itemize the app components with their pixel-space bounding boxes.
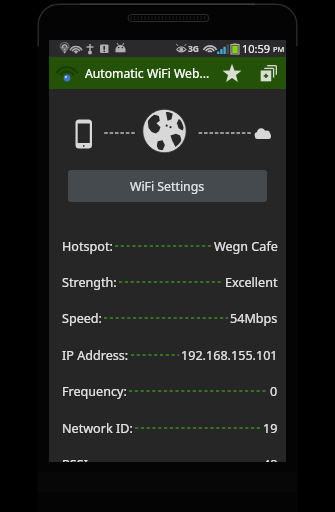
staticText: WiFi Settings <box>130 178 205 195</box>
staticText: Network ID: <box>62 420 133 437</box>
staticText: 54Mbps <box>230 310 278 327</box>
button[interactable]: New window <box>250 57 286 89</box>
staticText: 10:59 <box>242 41 271 56</box>
staticText: Frequency: <box>62 383 127 400</box>
staticText: RSSI: <box>62 456 92 462</box>
staticText: Wegn Cafe <box>214 238 278 255</box>
staticText: PM <box>271 44 285 54</box>
staticText: Automatic WiFi Web... <box>85 65 214 82</box>
staticText: 19 <box>263 420 278 437</box>
staticText: IP Address: <box>62 347 129 364</box>
staticText: 3G <box>188 43 200 55</box>
staticText: 0 <box>270 383 278 400</box>
button[interactable]: WiFi Settings <box>68 170 267 202</box>
staticText: Strength: <box>62 274 117 291</box>
staticText: 192.168.155.101 <box>181 347 278 364</box>
button[interactable]: Favorite <box>214 57 250 89</box>
staticText: Hotspot: <box>62 238 113 255</box>
staticText: Excellent <box>225 274 278 291</box>
staticText: -48 <box>259 456 278 462</box>
staticText: Speed: <box>62 310 102 327</box>
